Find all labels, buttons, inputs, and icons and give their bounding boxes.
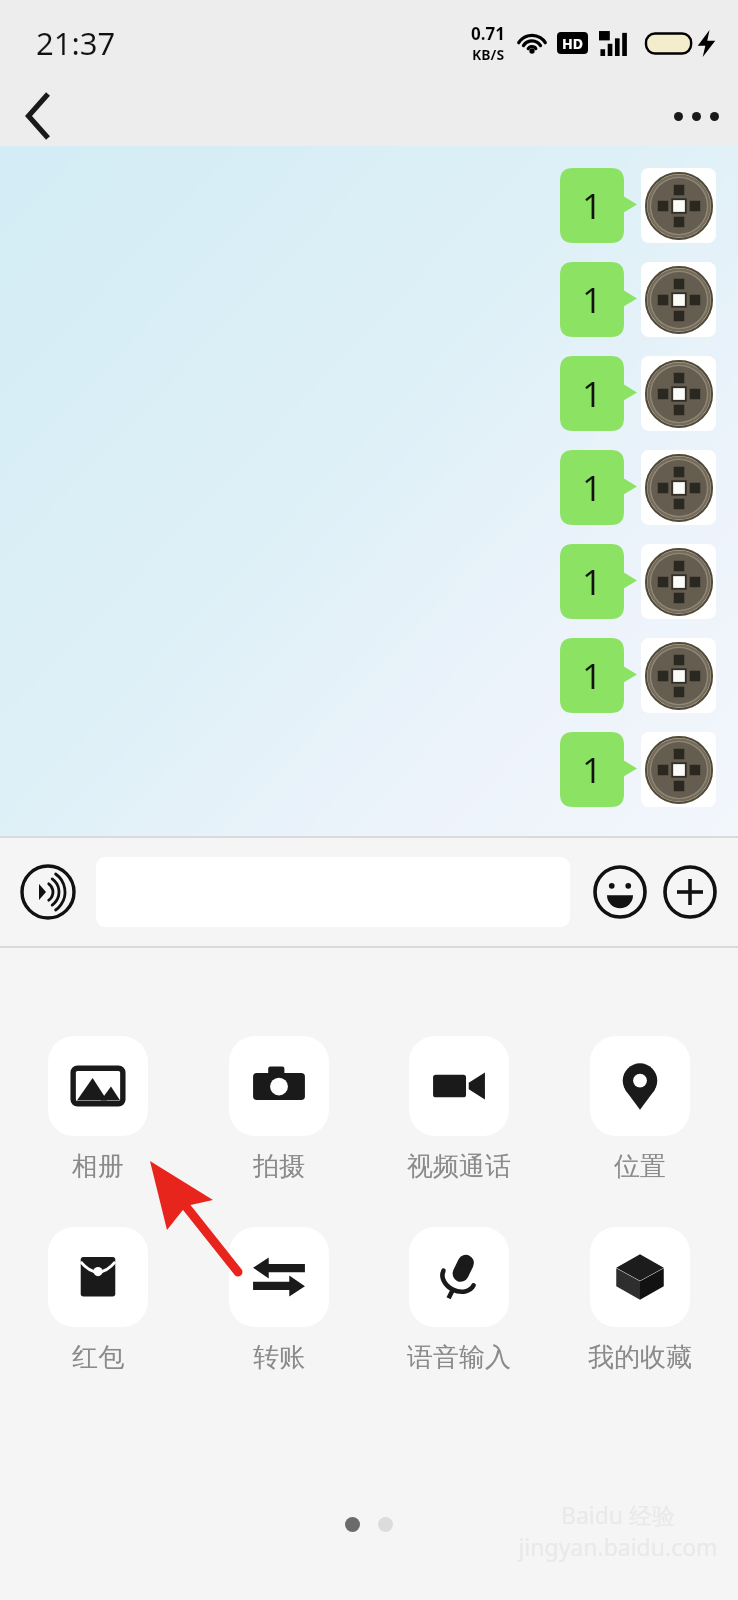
button[interactable]: More functions — [658, 860, 722, 924]
button[interactable]: 1 — [560, 544, 624, 619]
staticText: KB/S — [472, 45, 505, 64]
button[interactable]: Voice message — [16, 860, 80, 924]
button[interactable]: Emoji — [588, 860, 652, 924]
staticText: 1 — [582, 652, 603, 700]
button[interactable]: Back — [0, 86, 76, 146]
staticText: 1 — [582, 558, 603, 606]
button[interactable]: 1 — [560, 638, 624, 713]
staticText: 转账 — [253, 1341, 305, 1374]
staticText: 1 — [582, 746, 603, 794]
button[interactable]: 拍摄 — [209, 1036, 349, 1183]
staticText: 1 — [582, 182, 603, 230]
staticText: 位置 — [614, 1150, 666, 1183]
staticText: 1 — [582, 464, 603, 512]
button[interactable]: Contact avatar — [641, 544, 716, 619]
button[interactable]: 1 — [560, 732, 624, 807]
button[interactable]: More options — [654, 86, 738, 146]
button[interactable]: 1 — [560, 168, 624, 243]
button[interactable]: Contact avatar — [641, 732, 716, 807]
staticText: 1 — [582, 370, 603, 418]
button[interactable]: Contact avatar — [641, 450, 716, 525]
button[interactable]: Contact avatar — [641, 638, 716, 713]
button[interactable]: 转账 — [209, 1227, 349, 1374]
button[interactable]: Contact avatar — [641, 356, 716, 431]
button[interactable]: 语音输入 — [389, 1227, 529, 1374]
staticText: 红包 — [72, 1341, 124, 1374]
button[interactable]: 1 — [560, 356, 624, 431]
staticText: 0.71 — [471, 22, 505, 45]
staticText: HD — [562, 34, 583, 53]
button[interactable]: 位置 — [570, 1036, 710, 1183]
button[interactable]: Contact avatar — [641, 262, 716, 337]
staticText: 我的收藏 — [588, 1341, 692, 1374]
staticText: 拍摄 — [253, 1150, 305, 1183]
staticText: 21:37 — [36, 22, 116, 64]
staticText: Baidu 经验 jingyan.baidu.com — [518, 1499, 718, 1562]
staticText: 语音输入 — [407, 1341, 511, 1374]
staticText: 相册 — [72, 1150, 124, 1183]
button[interactable]: Contact avatar — [641, 168, 716, 243]
button[interactable]: 视频通话 — [389, 1036, 529, 1183]
button[interactable]: 红包 — [28, 1227, 168, 1374]
button[interactable]: 1 — [560, 262, 624, 337]
button[interactable]: 相册 — [28, 1036, 168, 1183]
staticText: 1 — [582, 276, 603, 324]
button[interactable]: 1 — [560, 450, 624, 525]
button[interactable]: 我的收藏 — [570, 1227, 710, 1374]
staticText: 视频通话 — [407, 1150, 511, 1183]
